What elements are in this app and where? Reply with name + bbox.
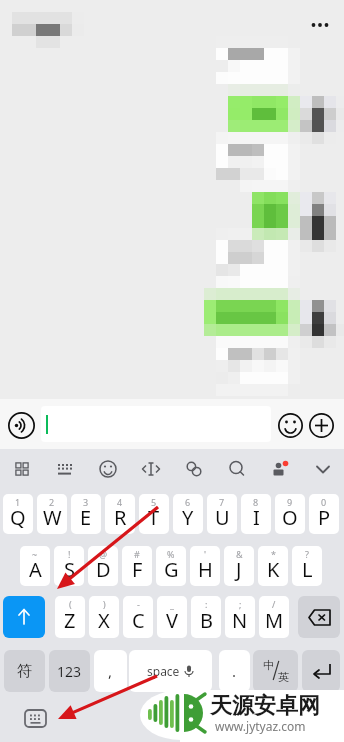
button[interactable]: 3 [71, 494, 101, 534]
staticText: T [148, 504, 160, 531]
button[interactable]: person [258, 449, 301, 489]
staticText: 123 [57, 662, 82, 681]
staticText: # [134, 548, 140, 560]
staticText: ? [305, 548, 309, 560]
staticText: * [271, 548, 276, 560]
button[interactable]: - [123, 596, 153, 638]
staticText: @ [99, 548, 108, 560]
button[interactable]: space [129, 650, 212, 692]
button[interactable]: ( [55, 596, 85, 638]
button[interactable]: : [191, 596, 221, 638]
staticText: O [282, 504, 298, 531]
button[interactable]: 5 [139, 494, 169, 534]
staticText: & [236, 548, 243, 560]
staticText: ! [68, 548, 71, 560]
button[interactable]: 123 [49, 650, 90, 692]
staticText: N [232, 607, 248, 634]
button[interactable]: ~ [20, 546, 50, 586]
button[interactable]: # [122, 546, 152, 586]
button[interactable]: down [301, 449, 344, 489]
button[interactable]: 0 [309, 494, 339, 534]
button[interactable]: ; [225, 596, 255, 638]
button[interactable]: Voice input [6, 410, 36, 440]
staticText: V [166, 607, 178, 634]
staticText: M [265, 607, 284, 634]
button[interactable]: ? [292, 546, 322, 586]
staticText: X [98, 607, 110, 634]
button[interactable]: 9 [275, 494, 305, 534]
staticText: ( [69, 598, 72, 610]
button[interactable]: 7 [207, 494, 237, 534]
staticText: Y [182, 504, 194, 531]
staticText: R [114, 504, 127, 531]
staticText: J [236, 556, 242, 583]
button[interactable]: _ [157, 596, 187, 638]
staticText: E [80, 504, 92, 531]
staticText: P [318, 504, 331, 531]
staticText: F [132, 556, 143, 583]
staticText: 4 [117, 496, 123, 508]
staticText: 6 [185, 496, 191, 508]
button[interactable] [41, 406, 271, 442]
button[interactable]: 符 [4, 650, 45, 692]
staticText: A [29, 556, 42, 583]
staticText: B [200, 607, 213, 634]
button[interactable]: 6 [173, 494, 203, 534]
staticText: : [205, 598, 208, 610]
staticText: ' [204, 548, 207, 560]
button[interactable]: , [94, 650, 127, 692]
button[interactable]: Shift [3, 596, 45, 638]
button[interactable]: 2 [37, 494, 67, 534]
staticText: % [167, 548, 175, 560]
button[interactable]: * [258, 546, 288, 586]
staticText: 5 [151, 496, 157, 508]
button[interactable]: ! [54, 546, 84, 586]
staticText: W [43, 504, 62, 531]
button[interactable]: / [259, 596, 289, 638]
staticText: C [132, 607, 145, 634]
button[interactable]: 8 [241, 494, 271, 534]
button[interactable]: link [172, 449, 215, 489]
staticText: , [108, 661, 113, 681]
button[interactable]: Enter [302, 650, 340, 692]
button[interactable]: More functions [306, 410, 336, 440]
staticText: ; [239, 598, 242, 610]
staticText: / [272, 598, 276, 610]
button[interactable]: ' [190, 546, 220, 586]
staticText: S [64, 556, 75, 583]
staticText: ) [103, 598, 106, 610]
button[interactable]: . [219, 650, 250, 692]
staticText: U [215, 504, 230, 531]
staticText: H [198, 556, 213, 583]
staticText: 9 [287, 496, 293, 508]
button[interactable]: Switch keyboard [23, 708, 47, 728]
staticText: Q [10, 504, 26, 531]
button[interactable]: grid [0, 449, 43, 489]
staticText: 符 [17, 662, 32, 681]
staticText: 天源安卓网 [210, 692, 320, 720]
button[interactable]: cursor [129, 449, 172, 489]
button[interactable]: @ [88, 546, 118, 586]
staticText: www.jytyaz.com [215, 718, 306, 734]
button[interactable]: 中 [253, 650, 298, 692]
staticText: 中 [263, 658, 274, 672]
button[interactable]: kbd [43, 449, 86, 489]
staticText: ~ [32, 548, 38, 560]
staticText: 3 [83, 496, 89, 508]
staticText: G [164, 556, 179, 583]
staticText: Z [64, 607, 76, 634]
button[interactable]: Emoji [275, 410, 305, 440]
button[interactable]: emoji [86, 449, 129, 489]
staticText: I [253, 504, 260, 531]
button[interactable]: ) [89, 596, 119, 638]
button[interactable]: search [215, 449, 258, 489]
button[interactable]: % [156, 546, 186, 586]
button[interactable]: 1 [3, 494, 33, 534]
button[interactable]: 4 [105, 494, 135, 534]
staticText: 2 [49, 496, 55, 508]
button[interactable]: & [224, 546, 254, 586]
staticText: 8 [253, 496, 259, 508]
button[interactable]: More options [303, 12, 337, 38]
button[interactable]: Backspace [298, 596, 340, 638]
staticText: L [302, 556, 313, 583]
